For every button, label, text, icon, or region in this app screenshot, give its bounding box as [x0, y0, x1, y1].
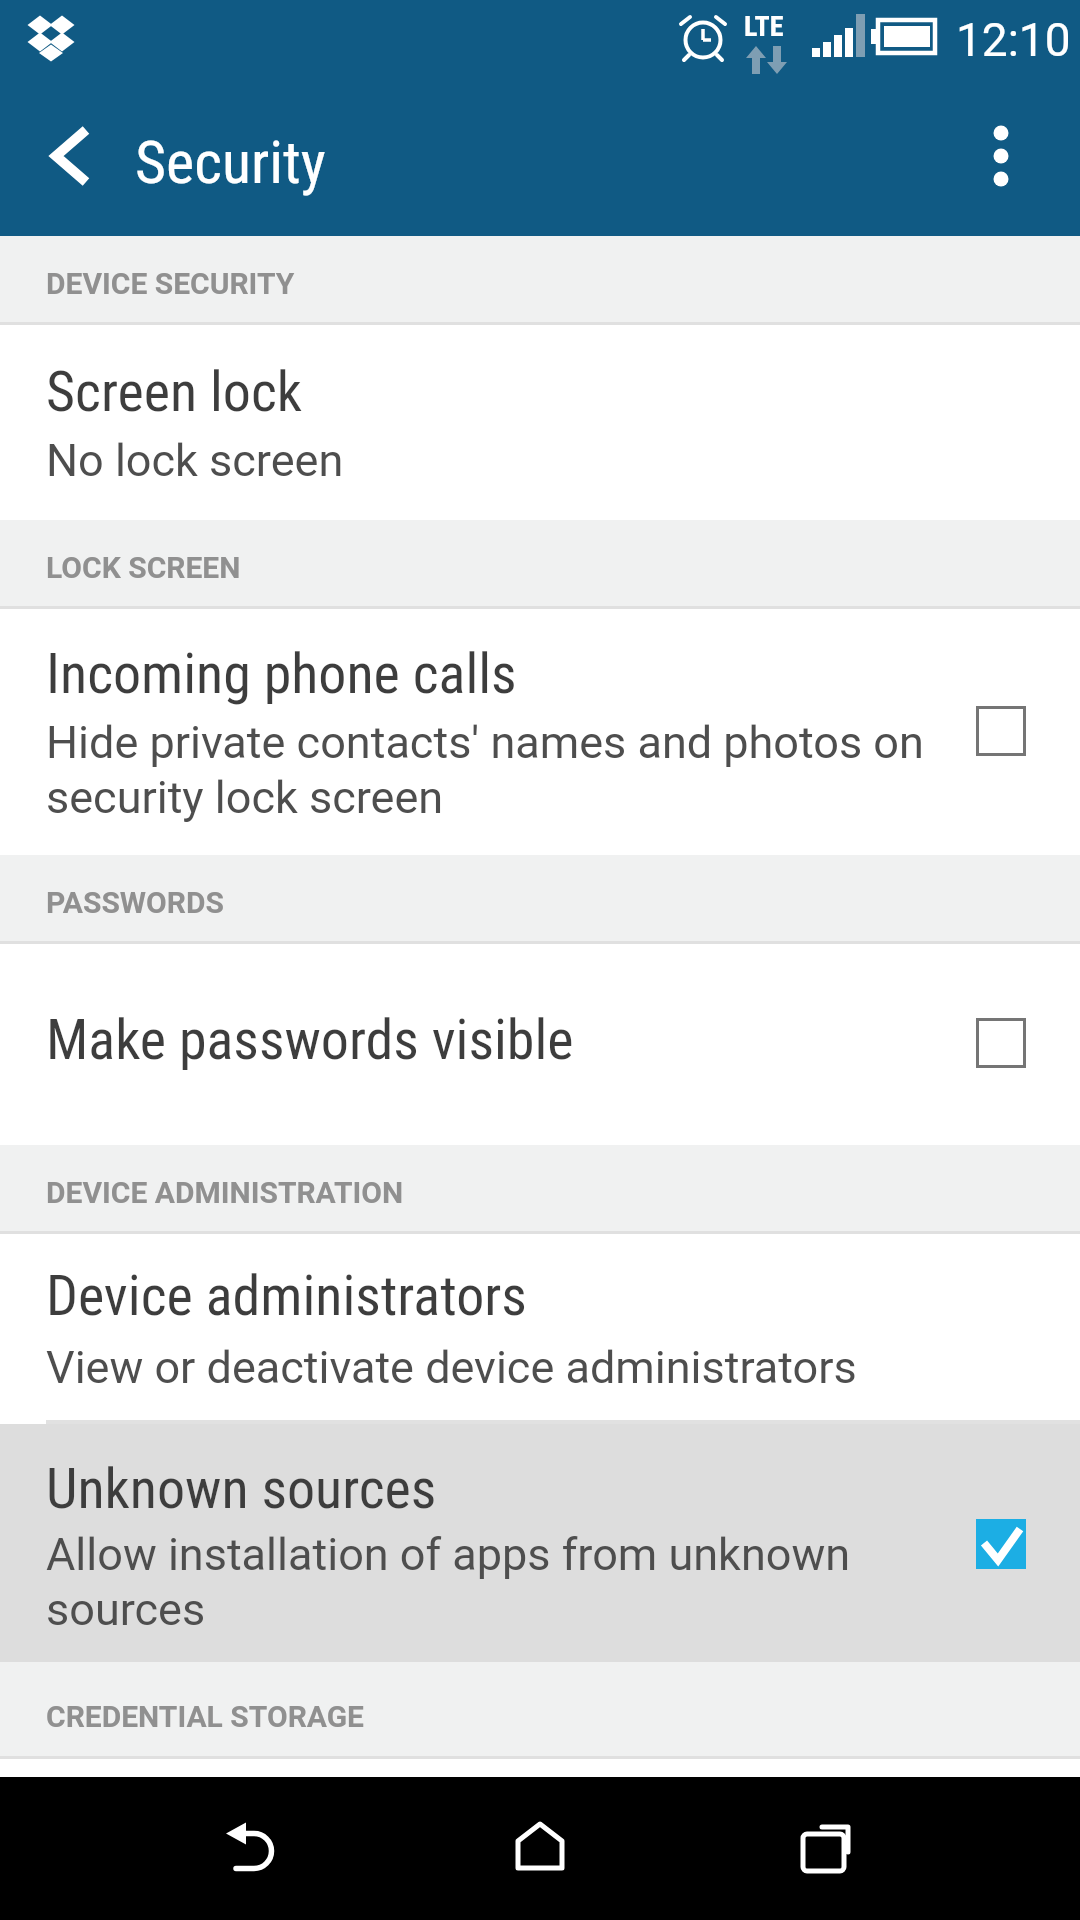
button[interactable]: Make passwords visible: [0, 944, 1080, 1145]
button[interactable]: [30, 120, 106, 196]
button[interactable]: Incoming phone calls: [0, 609, 1080, 855]
staticText: Hide private contacts' names and photos …: [46, 716, 924, 824]
button[interactable]: [205, 1802, 305, 1902]
staticText: Security: [135, 127, 326, 197]
staticText: Incoming phone calls: [46, 641, 517, 707]
staticText: Make passwords visible: [46, 1007, 574, 1073]
staticText: DEVICE SECURITY: [46, 266, 295, 301]
button[interactable]: [780, 1802, 880, 1902]
staticText: LTE: [744, 10, 784, 43]
staticText: No lock screen: [46, 434, 344, 487]
staticText: CREDENTIAL STORAGE: [46, 1699, 364, 1734]
staticText: View or deactivate device administrators: [46, 1341, 857, 1394]
button[interactable]: Device administrators: [0, 1234, 1080, 1420]
staticText: PASSWORDS: [46, 885, 224, 920]
staticText: DEVICE ADMINISTRATION: [46, 1175, 404, 1210]
staticText: Device administrators: [46, 1263, 527, 1329]
staticText: 12:10: [956, 13, 1071, 67]
button[interactable]: Screen lock: [0, 325, 1080, 520]
button[interactable]: [966, 120, 1036, 190]
button[interactable]: [490, 1802, 590, 1902]
staticText: Allow installation of apps from unknown …: [46, 1528, 851, 1636]
staticText: Unknown sources: [46, 1456, 437, 1522]
button[interactable]: Unknown sources: [0, 1424, 1080, 1662]
staticText: LOCK SCREEN: [46, 550, 241, 585]
staticText: Screen lock: [46, 359, 302, 425]
